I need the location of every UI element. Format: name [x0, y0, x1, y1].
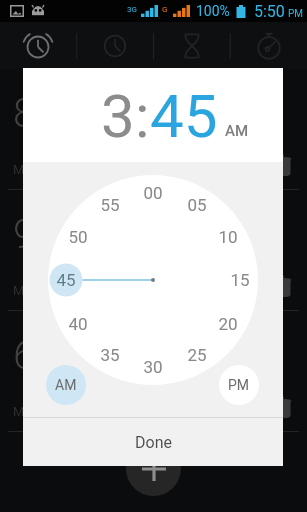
staticText: 3G	[127, 5, 137, 14]
button[interactable]: 45	[150, 81, 218, 151]
staticText: 35	[100, 345, 120, 365]
button[interactable]: 40	[61, 311, 95, 337]
staticText: PM	[228, 377, 250, 393]
button[interactable]: 35	[93, 342, 127, 368]
staticText: 10	[218, 227, 238, 247]
button[interactable]: 15	[223, 267, 257, 293]
button[interactable]: Add alarm	[126, 441, 181, 496]
staticText: PM	[93, 358, 115, 374]
button[interactable]: Timer	[153, 22, 230, 69]
button[interactable]: Delete alarm	[277, 154, 292, 178]
staticText: AM	[55, 377, 77, 393]
button[interactable]: AM	[46, 365, 86, 405]
staticText: 15	[230, 270, 250, 290]
staticText: Mon, Tue, Wed, Thu, Fri	[13, 162, 146, 177]
staticText: 8:30	[13, 90, 88, 137]
staticText: :	[135, 81, 150, 151]
button[interactable]: Delete alarm	[277, 396, 292, 420]
staticText: 50	[68, 227, 88, 247]
button[interactable]: 10	[211, 224, 245, 250]
staticText: PM	[288, 8, 304, 20]
staticText: 6:15	[13, 332, 88, 379]
staticText: 40	[68, 314, 88, 334]
button[interactable]: 8:30	[13, 69, 292, 189]
staticText: 45	[56, 270, 76, 290]
staticText: AM	[93, 116, 115, 132]
button[interactable]: Stopwatch	[230, 22, 307, 69]
button[interactable]: Clock	[76, 22, 153, 69]
staticText: 45	[150, 81, 218, 151]
button[interactable]: 6:15	[13, 311, 292, 431]
staticText: 00	[143, 183, 163, 203]
button[interactable]: 50	[61, 224, 95, 250]
staticText: Mon, Tue, Wed, Thu, Fri	[13, 283, 146, 298]
staticText: Mon, Tue, Wed, Thu, Fri	[13, 404, 146, 419]
button[interactable]: Alarm	[0, 22, 76, 69]
staticText: Done	[135, 433, 172, 452]
button[interactable]: 30	[136, 354, 170, 380]
button[interactable]: 05	[180, 192, 214, 218]
staticText: 9:00	[13, 211, 88, 258]
staticText: AM	[225, 122, 249, 140]
staticText: 55	[100, 195, 120, 215]
staticText: G	[162, 5, 168, 14]
staticText: 3	[101, 81, 135, 151]
button[interactable]: Done	[23, 418, 283, 466]
button[interactable]: 00	[136, 180, 170, 206]
staticText: 05	[187, 195, 207, 215]
staticText: 25	[187, 345, 207, 365]
staticText: 5:50	[254, 2, 285, 21]
button[interactable]: 3	[101, 81, 135, 151]
staticText: 30	[143, 357, 163, 377]
button[interactable]: 25	[180, 342, 214, 368]
button[interactable]: PM	[219, 365, 259, 405]
button[interactable]: Delete alarm	[277, 275, 292, 299]
staticText: 20	[218, 314, 238, 334]
button[interactable]: 20	[211, 311, 245, 337]
staticText: 100%	[196, 3, 230, 19]
button[interactable]: 45	[49, 267, 83, 293]
button[interactable]: 9:00	[13, 190, 292, 310]
button[interactable]: 55	[93, 192, 127, 218]
